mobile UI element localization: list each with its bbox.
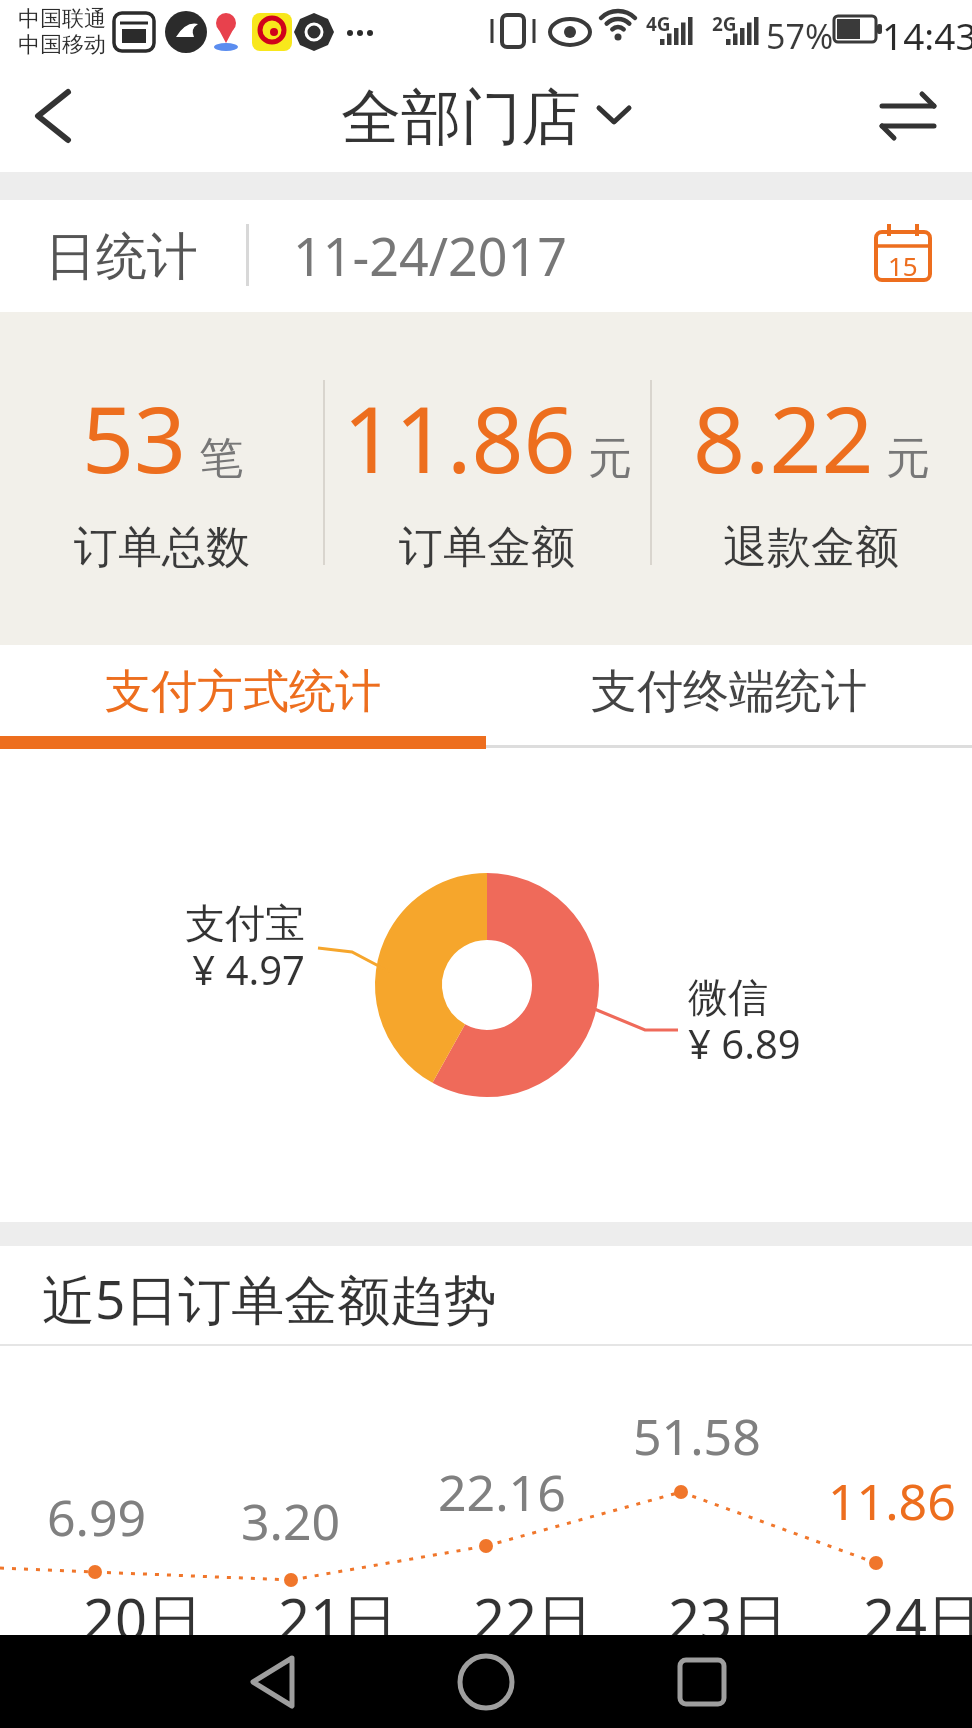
staticText: 订单金额 bbox=[399, 520, 575, 575]
staticText: 近5日订单金额趋势 bbox=[42, 1262, 497, 1334]
staticText: 退款金额 bbox=[723, 520, 899, 575]
staticText: 15 bbox=[888, 248, 918, 283]
staticText: 20日 bbox=[83, 1580, 204, 1646]
button[interactable] bbox=[16, 80, 96, 152]
button[interactable]: 支付方式统计 bbox=[0, 645, 486, 738]
staticText: 53 bbox=[82, 376, 187, 496]
staticText: 4G bbox=[646, 11, 671, 37]
staticText: 支付终端统计 bbox=[591, 663, 867, 721]
staticText: 3.20 bbox=[241, 1487, 341, 1547]
staticText: 24日 bbox=[863, 1580, 972, 1646]
staticText: 笔 bbox=[199, 431, 243, 486]
button[interactable] bbox=[652, 1635, 752, 1728]
button[interactable]: 支付终端统计 bbox=[486, 645, 972, 738]
button[interactable] bbox=[872, 84, 948, 148]
staticText: 22日 bbox=[473, 1580, 594, 1646]
staticText: 支付宝 ¥ 4.97 bbox=[185, 898, 305, 997]
staticText: 23日 bbox=[668, 1580, 789, 1646]
staticText: 微信 ¥ 6.89 bbox=[688, 972, 801, 1071]
button[interactable]: 15 bbox=[870, 220, 940, 292]
staticText: 2G bbox=[712, 11, 737, 37]
staticText: 中国联通 中国移动 bbox=[18, 5, 106, 59]
staticText: 11-24/2017 bbox=[293, 220, 568, 291]
staticText: 全部门店 bbox=[341, 80, 581, 152]
staticText: 11.86 bbox=[828, 1467, 956, 1527]
staticText: 订单总数 bbox=[74, 520, 250, 575]
staticText: 元 bbox=[886, 431, 930, 486]
staticText: 21日 bbox=[278, 1580, 399, 1646]
staticText: 日统计 bbox=[45, 225, 198, 289]
staticText: 元 bbox=[588, 431, 632, 486]
staticText: 51.58 bbox=[633, 1402, 761, 1462]
staticText: 11.86 bbox=[343, 376, 576, 496]
staticText: 57% bbox=[766, 13, 834, 59]
staticText: 支付方式统计 bbox=[105, 663, 381, 721]
button[interactable]: 全部门店 bbox=[341, 80, 631, 152]
staticText: 8.22 bbox=[693, 376, 874, 496]
staticText: 22.16 bbox=[438, 1458, 566, 1518]
button[interactable] bbox=[221, 1635, 321, 1728]
button[interactable]: 日统计 bbox=[0, 200, 972, 312]
staticText: 14:43 bbox=[882, 10, 972, 60]
button[interactable] bbox=[436, 1635, 536, 1728]
staticText: 6.99 bbox=[47, 1483, 147, 1543]
